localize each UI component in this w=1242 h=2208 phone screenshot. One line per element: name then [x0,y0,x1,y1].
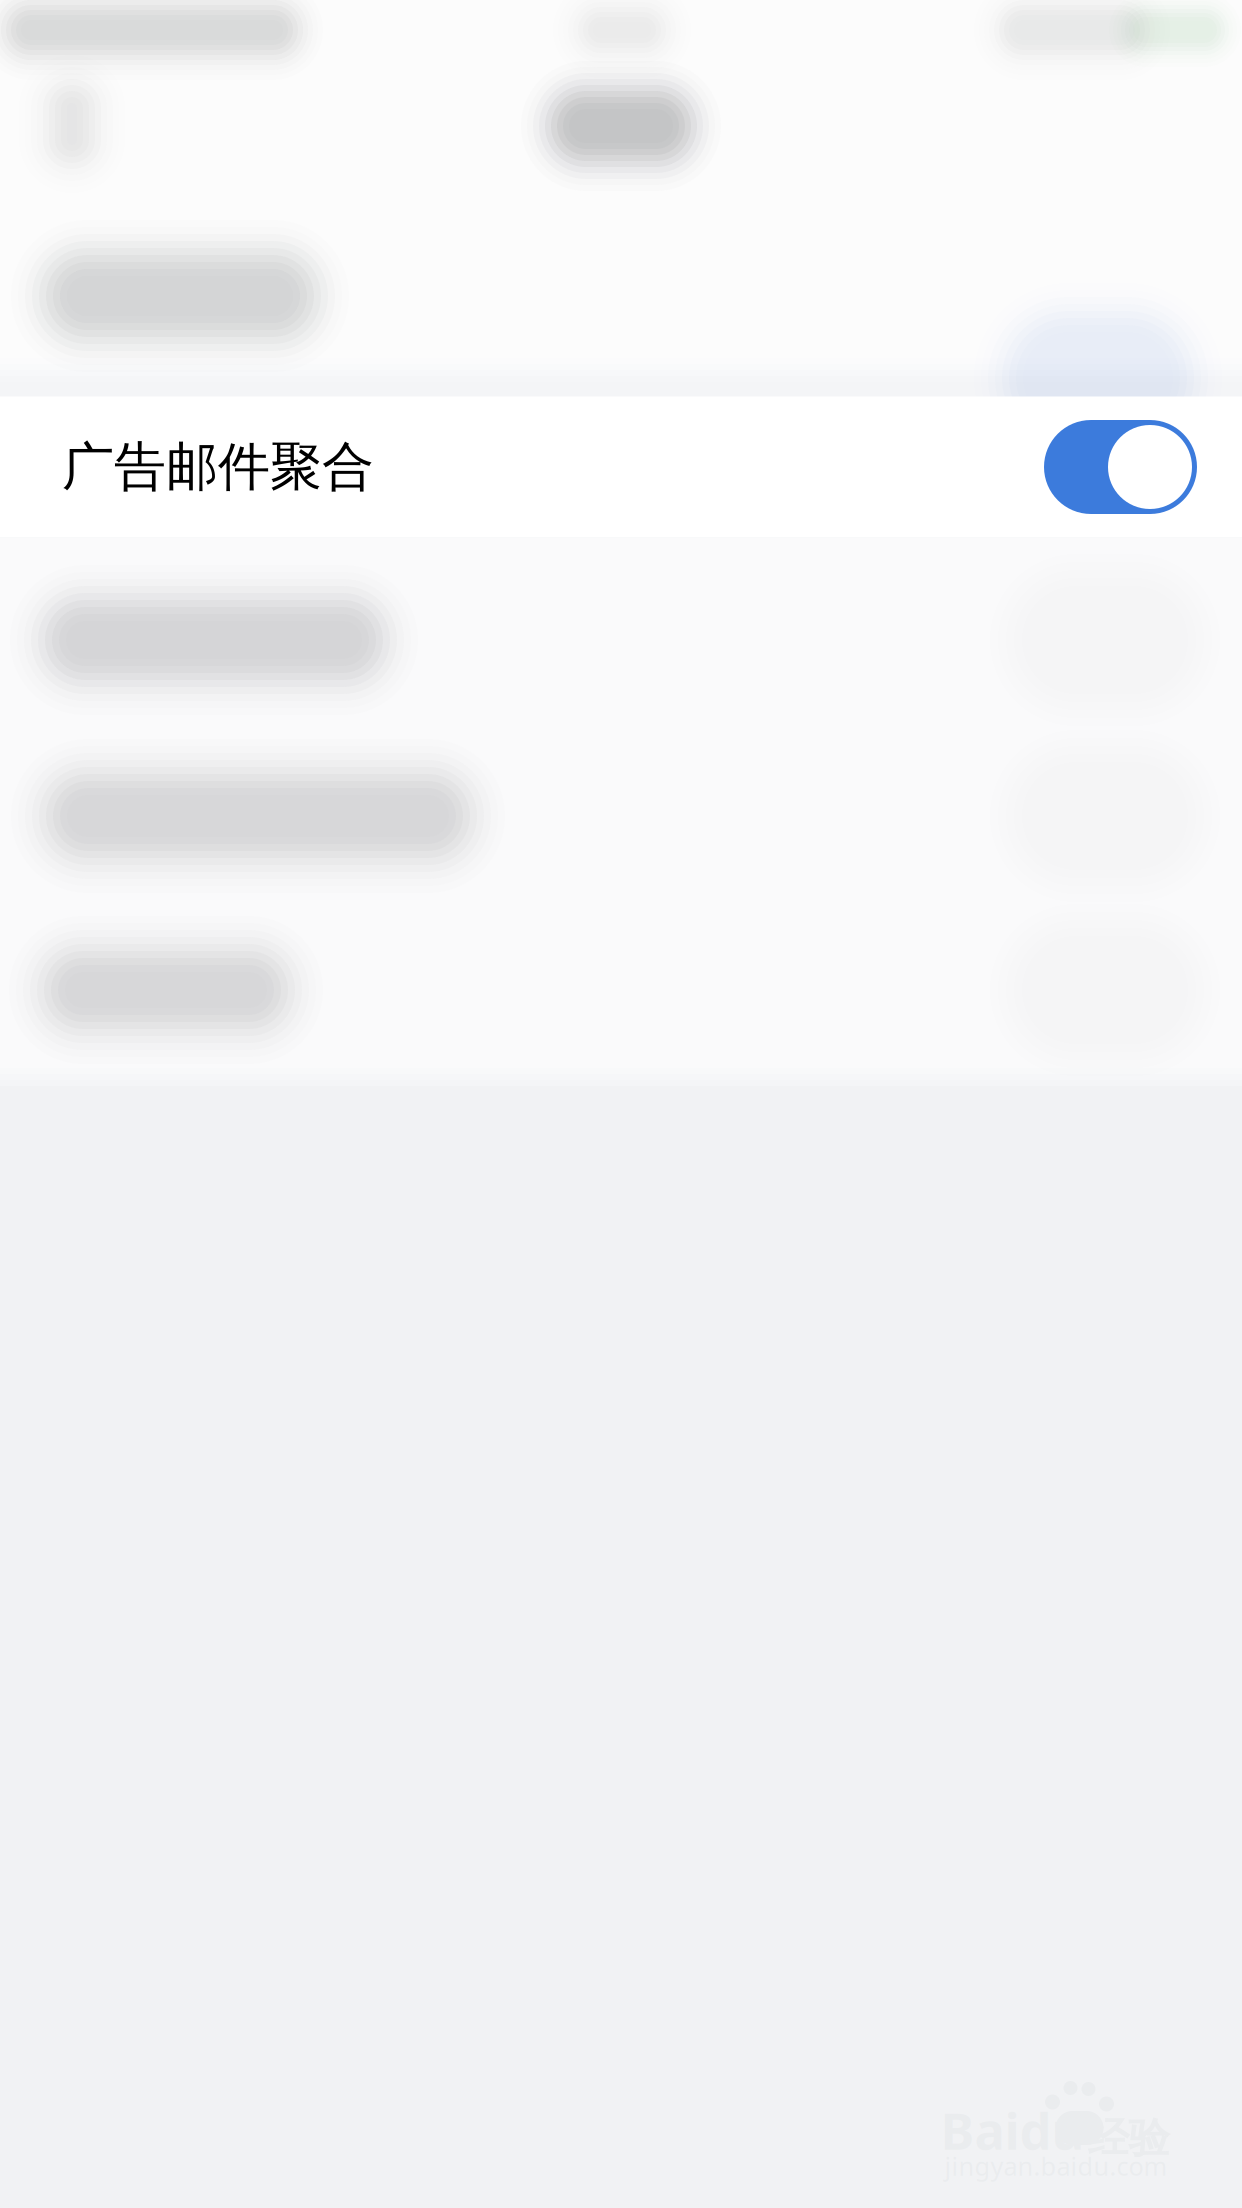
staticText: Baidu [940,2096,1084,2164]
button[interactable]: Back [0,67,150,185]
button[interactable]: 广告邮件聚合 [0,396,1242,537]
button[interactable]: Settings row [0,538,1242,714]
button[interactable]: Settings row [0,714,1242,890]
button[interactable]: Settings row [0,890,1242,1060]
staticText: 经验 [1087,2113,1169,2164]
staticText: 广告邮件聚合 [62,435,374,499]
button[interactable]: Settings row [0,200,1242,396]
